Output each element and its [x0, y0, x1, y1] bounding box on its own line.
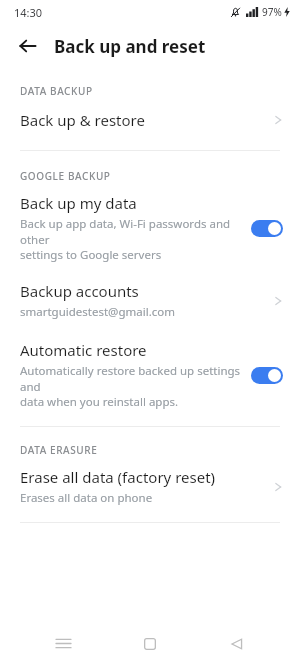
other: Open	[272, 479, 284, 495]
button[interactable]: Back up my data	[0, 193, 300, 263]
other: Open	[272, 112, 284, 128]
staticText: Automatically restore backed up settings…	[20, 363, 243, 394]
button[interactable]: Backup accounts	[0, 281, 300, 320]
button[interactable]: Back up & restore	[0, 108, 300, 132]
staticText: Back up app data, Wi-Fi passwords and ot…	[20, 216, 243, 247]
button[interactable]: Recent apps	[39, 620, 87, 667]
other: Open	[272, 293, 284, 309]
staticText: DATA BACKUP	[20, 84, 93, 98]
staticText: 14:30	[14, 5, 43, 20]
staticText: data when you reinstall apps.	[20, 394, 179, 410]
staticText: smartguidestest@gmail.com	[20, 304, 175, 320]
staticText: Erase all data (factory reset)	[20, 467, 216, 487]
staticText: DATA ERASURE	[20, 443, 98, 457]
staticText: Erases all data on phone	[20, 490, 153, 506]
button[interactable]: Back	[12, 30, 44, 62]
button[interactable]: Toggle on	[251, 220, 283, 237]
button[interactable]: Erase all data (factory reset)	[0, 467, 300, 506]
button[interactable]: Toggle on	[251, 367, 283, 384]
staticText: settings to Google servers	[20, 247, 162, 263]
button[interactable]: Back	[213, 620, 261, 667]
staticText: 97%	[262, 5, 282, 19]
staticText: Back up my data	[20, 193, 137, 213]
staticText: Back up & restore	[20, 110, 272, 130]
button[interactable]: Automatic restore	[0, 340, 300, 410]
staticText: Automatic restore	[20, 340, 147, 360]
staticText: Backup accounts	[20, 281, 139, 301]
button[interactable]: Home	[126, 620, 174, 667]
staticText: GOOGLE BACKUP	[20, 169, 111, 183]
staticText: Back up and reset	[54, 35, 206, 58]
